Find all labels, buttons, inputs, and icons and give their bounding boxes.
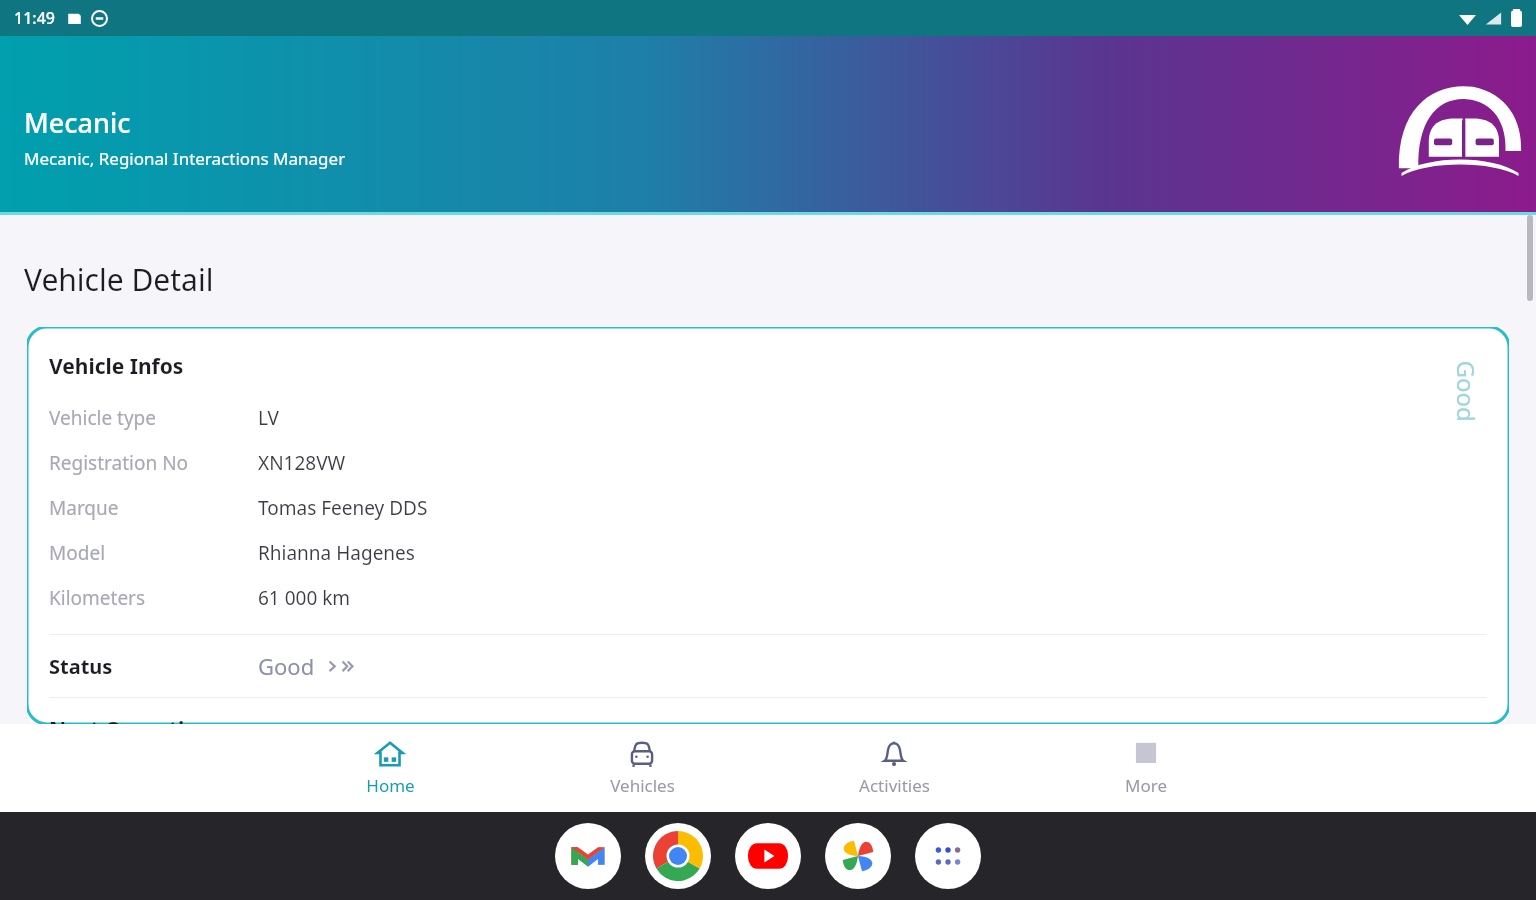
staticText: More <box>1125 774 1167 797</box>
button[interactable]: Vehicles <box>516 724 768 812</box>
staticText: Vehicle Detail <box>24 259 214 300</box>
staticText: XN128VW <box>258 450 346 476</box>
staticText: Mecanic, Regional Interactions Manager <box>24 147 346 170</box>
button[interactable]: App <box>645 823 711 889</box>
staticText: Mecanic <box>24 104 131 141</box>
button[interactable]: More <box>1020 724 1272 812</box>
staticText: Tomas Feeney DDS <box>258 495 428 521</box>
staticText: Vehicle type <box>49 405 157 431</box>
staticText: Next Operation <box>49 715 212 724</box>
staticText: Status <box>49 653 113 680</box>
staticText: Model <box>49 540 106 566</box>
staticText: Rhianna Hagenes <box>258 540 415 566</box>
button[interactable]: App <box>555 823 621 889</box>
button[interactable]: App <box>735 823 801 889</box>
staticText: Marque <box>49 495 119 521</box>
staticText: Good <box>258 651 315 681</box>
button[interactable]: App <box>915 823 981 889</box>
staticText: Home <box>366 774 415 797</box>
staticText: Vehicle Infos <box>49 352 184 381</box>
staticText: Vehicles <box>610 774 675 797</box>
staticText: 61 000 km <box>258 585 351 611</box>
button[interactable]: App <box>825 823 891 889</box>
staticText: Kilometers <box>49 585 146 611</box>
staticText: Good <box>1449 360 1482 422</box>
staticText: Registration No <box>49 450 189 476</box>
staticText: LV <box>258 405 279 431</box>
staticText: 11:49 <box>14 7 55 29</box>
button[interactable]: Status <box>49 635 1509 697</box>
staticText: Activities <box>859 774 930 797</box>
button[interactable]: Activities <box>768 724 1020 812</box>
button[interactable]: Home <box>264 724 516 812</box>
